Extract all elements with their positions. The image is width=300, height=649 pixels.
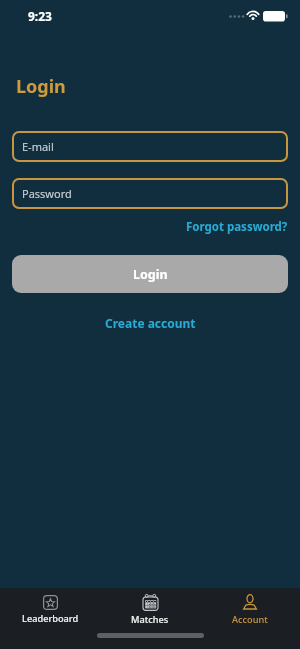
staticText: E-mail [22, 139, 54, 154]
staticText: Leaderboard [22, 612, 79, 625]
staticText: Account [232, 613, 268, 626]
button[interactable]: Matches [100, 588, 200, 633]
staticText: Login [133, 266, 168, 283]
staticText: Password [22, 186, 72, 201]
button[interactable]: Password [12, 178, 288, 209]
staticText: Matches [131, 613, 169, 626]
button[interactable]: E-mail [12, 131, 288, 162]
button[interactable]: Forgot password? [186, 219, 288, 235]
button[interactable]: Account [200, 588, 300, 633]
button[interactable]: Login [12, 255, 288, 293]
staticText: Login [16, 74, 66, 99]
button[interactable]: Leaderboard [0, 588, 100, 633]
staticText: 9:23 [28, 8, 52, 24]
button[interactable]: Create account [105, 315, 196, 331]
